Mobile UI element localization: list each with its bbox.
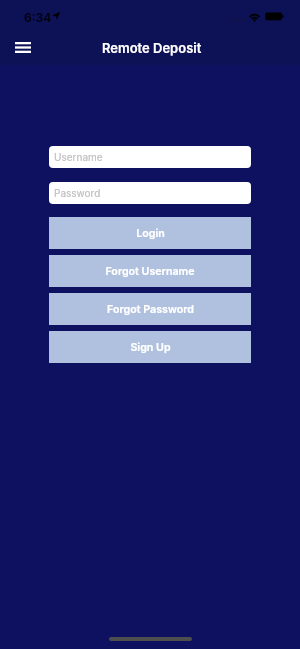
staticText: Username <box>54 151 103 163</box>
staticText: Forgot Username <box>105 265 195 278</box>
button[interactable]: Menu <box>9 35 37 60</box>
staticText: Password <box>54 187 101 199</box>
staticText: Forgot Password <box>107 303 194 316</box>
staticText: Remote Deposit <box>102 40 202 56</box>
staticText: Login <box>136 227 165 240</box>
button[interactable]: Login <box>49 217 251 249</box>
button[interactable]: Username <box>49 146 251 168</box>
button[interactable]: Password <box>49 182 251 204</box>
staticText: 6:34 <box>24 10 52 25</box>
button[interactable]: Forgot Username <box>49 255 251 287</box>
button[interactable]: Sign Up <box>49 331 251 363</box>
staticText: Sign Up <box>130 341 171 354</box>
button[interactable]: Forgot Password <box>49 293 251 325</box>
